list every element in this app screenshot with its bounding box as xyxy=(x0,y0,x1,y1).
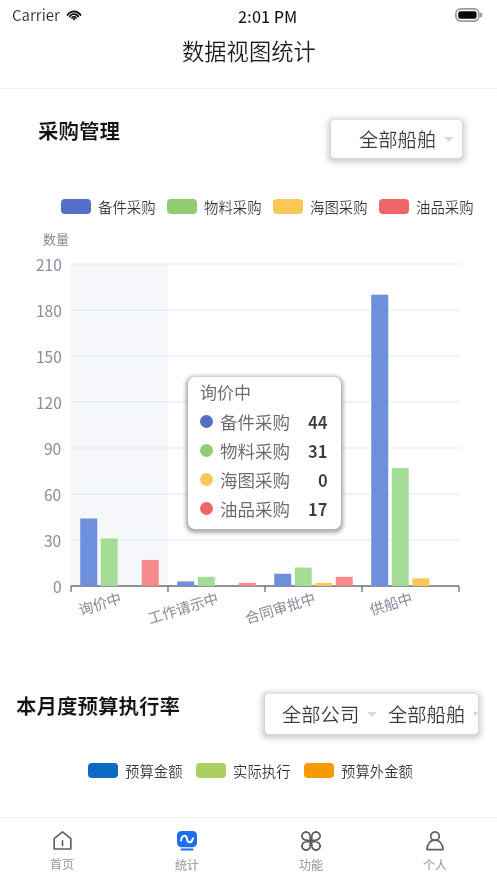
staticText: 预算金额 xyxy=(125,760,183,780)
button[interactable]: 全部船舶 xyxy=(331,120,462,158)
staticText: 数据视图统计 xyxy=(182,34,316,66)
staticText: 2:01 PM xyxy=(238,4,298,27)
staticText: 150 xyxy=(36,345,62,367)
staticText: 本月度预算执行率 xyxy=(16,690,180,720)
staticText: 询价中 xyxy=(76,586,124,619)
staticText: 30 xyxy=(44,529,62,551)
staticText: 60 xyxy=(44,483,62,505)
button[interactable]: Profile xyxy=(373,818,497,883)
other: Statistics xyxy=(177,831,197,851)
button[interactable]: 全部船舶 xyxy=(388,700,478,728)
staticText: 120 xyxy=(36,391,62,413)
staticText: 210 xyxy=(36,253,62,275)
staticText: 全部船舶 xyxy=(388,700,466,728)
button[interactable]: 全部公司 xyxy=(282,700,377,728)
staticText: 31 xyxy=(308,439,328,463)
staticText: 物料采购 xyxy=(204,196,262,216)
staticText: 油品采购 xyxy=(220,496,290,521)
staticText: 海图采购 xyxy=(310,196,368,216)
staticText: 功能 xyxy=(299,856,324,873)
staticText: 预算外金额 xyxy=(341,760,413,780)
staticText: 全部公司 xyxy=(282,700,360,728)
staticText: 44 xyxy=(308,410,328,434)
staticText: 备件采购 xyxy=(220,409,290,434)
button[interactable]: Home xyxy=(0,818,125,883)
button[interactable]: Functions xyxy=(249,818,373,883)
staticText: 供船中 xyxy=(367,586,415,619)
staticText: 90 xyxy=(44,437,62,459)
staticText: 全部船舶 xyxy=(359,125,437,153)
other: Home xyxy=(53,831,72,850)
staticText: 采购管理 xyxy=(38,115,120,145)
staticText: 询价中 xyxy=(200,379,251,401)
other: Profile xyxy=(425,831,445,851)
staticText: 油品采购 xyxy=(416,196,474,216)
staticText: 海图采购 xyxy=(220,467,290,492)
staticText: 合同审批中 xyxy=(242,586,318,628)
staticText: 首页 xyxy=(50,855,75,872)
staticText: Carrier xyxy=(12,4,60,26)
staticText: 17 xyxy=(308,497,328,521)
staticText: 0 xyxy=(53,575,62,597)
staticText: 0 xyxy=(318,468,328,492)
button[interactable]: Statistics xyxy=(125,818,249,883)
staticText: 180 xyxy=(36,299,62,321)
staticText: 数量 xyxy=(43,229,70,248)
staticText: 备件采购 xyxy=(98,196,156,216)
staticText: 实际执行 xyxy=(233,760,291,780)
staticText: 物料采购 xyxy=(220,438,290,463)
staticText: 统计 xyxy=(175,856,200,873)
other: Functions xyxy=(301,831,321,851)
staticText: 工作请示中 xyxy=(145,586,221,628)
staticText: 个人 xyxy=(423,856,448,873)
